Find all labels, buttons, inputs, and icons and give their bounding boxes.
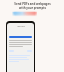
staticText: Send PDFs and webpages [14,2,51,6]
staticText: New chat [17,25,25,27]
staticText: with your prompts [19,6,46,10]
button[interactable]: New chat [9,25,32,27]
button[interactable] [9,36,32,38]
